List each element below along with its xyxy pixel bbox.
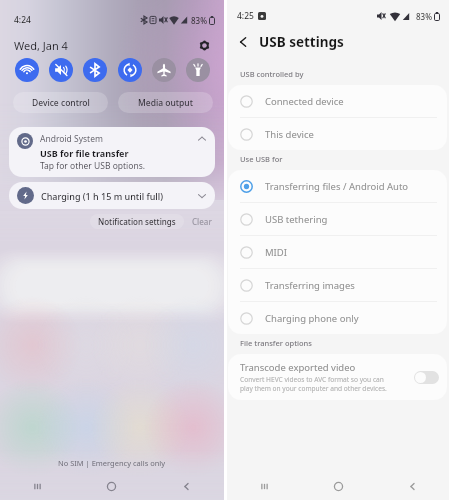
staticText: Charging phone only: [265, 312, 359, 325]
button[interactable]: This device: [228, 118, 447, 150]
staticText: Use USB for: [240, 154, 283, 164]
button[interactable]: Home: [74, 472, 149, 500]
staticText: 4:24: [14, 14, 31, 26]
staticText: USB settings: [259, 33, 344, 51]
staticText: 4:25: [237, 10, 254, 22]
button[interactable]: MIDI: [228, 236, 447, 269]
staticText: Android System: [40, 133, 103, 145]
button[interactable]: Transferring files / Android Auto: [228, 170, 447, 203]
staticText: Connected device: [265, 95, 344, 108]
staticText: No SIM | Emergency calls only: [58, 458, 166, 468]
button[interactable]: Charging (1 h 15 m until full): [9, 182, 215, 209]
staticText: MIDI: [265, 246, 287, 259]
button[interactable]: Airplane mode: [152, 58, 176, 82]
staticText: USB for file transfer: [40, 147, 129, 159]
staticText: 83%: [416, 11, 432, 22]
staticText: Wed, Jan 4: [14, 38, 68, 53]
button[interactable]: Recents: [227, 472, 301, 500]
button[interactable]: Back: [149, 472, 224, 500]
staticText: Clear: [192, 216, 212, 227]
button[interactable]: Auto rotate: [118, 58, 142, 82]
staticText: Media output: [138, 97, 193, 109]
button[interactable]: USB tethering: [228, 203, 447, 236]
button[interactable]: Bluetooth: [83, 58, 107, 82]
button[interactable]: Clear: [189, 214, 215, 229]
button[interactable]: Back: [375, 472, 449, 500]
staticText: This device: [265, 128, 314, 141]
button[interactable]: Flashlight: [186, 58, 210, 82]
staticText: Transferring images: [265, 279, 355, 292]
staticText: 83%: [191, 15, 207, 26]
staticText: Device control: [32, 97, 90, 109]
staticText: Transferring files / Android Auto: [265, 180, 409, 193]
button[interactable]: Notification settings: [90, 214, 184, 229]
staticText: Convert HEVC videos to AVC format so you…: [240, 375, 387, 393]
button[interactable]: Connected device: [228, 85, 447, 118]
button[interactable]: Transcode exported video toggle: [414, 371, 439, 384]
button[interactable]: Charging phone only: [228, 302, 447, 334]
button[interactable]: Device control: [13, 92, 108, 113]
staticText: Tap for other USB options.: [40, 160, 146, 172]
staticText: File transfer options: [240, 338, 312, 348]
button[interactable]: Mute: [49, 58, 73, 82]
staticText: USB controlled by: [240, 69, 304, 79]
staticText: USB tethering: [265, 213, 328, 226]
button[interactable]: Wi-Fi: [15, 58, 39, 82]
staticText: Transcode exported video: [240, 361, 356, 374]
staticText: Notification settings: [98, 216, 176, 227]
button[interactable]: Settings: [196, 37, 212, 53]
button[interactable]: Android System: [9, 127, 215, 177]
button[interactable]: Transcode exported video: [228, 354, 447, 400]
button[interactable]: Media output: [118, 92, 213, 113]
button[interactable]: Home: [301, 472, 375, 500]
staticText: Charging (1 h 15 m until full): [41, 190, 164, 202]
button[interactable]: Transferring images: [228, 269, 447, 302]
button[interactable]: Back: [233, 32, 253, 52]
button[interactable]: Recents: [0, 472, 74, 500]
